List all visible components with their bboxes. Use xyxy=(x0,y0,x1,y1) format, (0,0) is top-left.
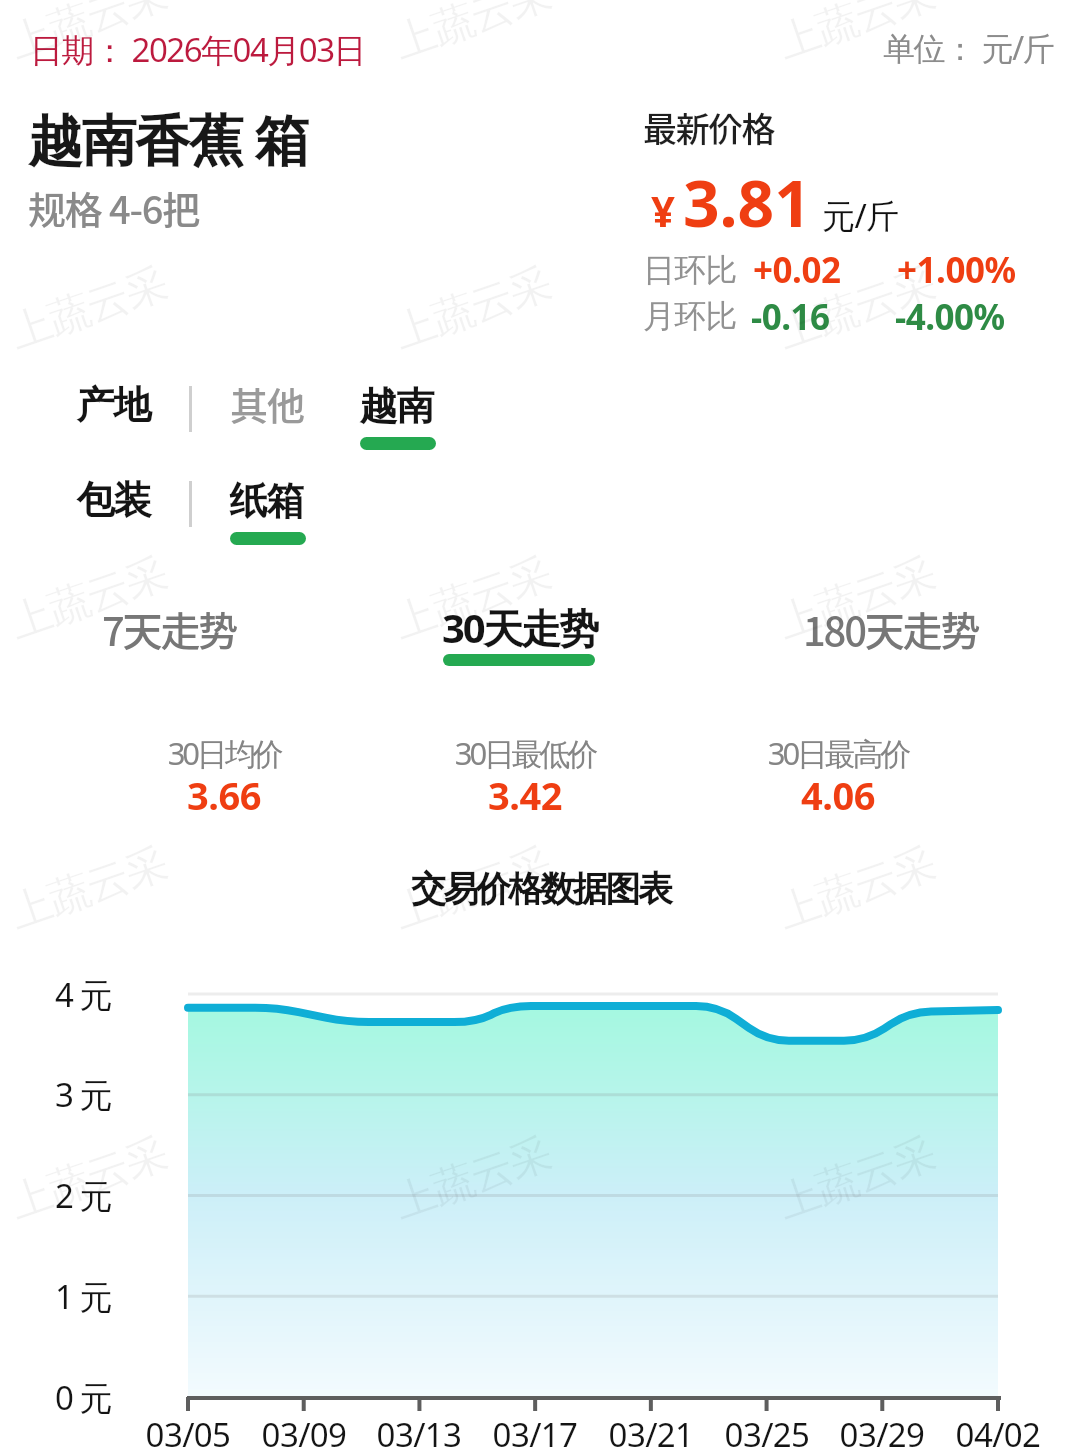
staticText: 03/09 xyxy=(234,1412,374,1455)
staticText: 03/17 xyxy=(465,1412,605,1455)
staticText: 上蔬云采 xyxy=(4,0,174,70)
staticText: 上蔬云采 xyxy=(4,1127,174,1230)
staticText: 0 元 xyxy=(55,1375,111,1420)
staticText: 2 元 xyxy=(55,1173,111,1218)
staticText: +0.02 xyxy=(753,246,841,294)
staticText: 上蔬云采 xyxy=(772,0,942,70)
staticText: 上蔬云采 xyxy=(772,1127,942,1230)
staticText: 04/02 xyxy=(928,1412,1068,1455)
staticText: 3.42 xyxy=(375,769,675,821)
staticText: 产地 xyxy=(77,381,151,429)
staticText: 纸箱 xyxy=(230,477,304,525)
button[interactable]: 30天走势 xyxy=(428,592,611,663)
staticText: 单位： 元/斤 xyxy=(883,26,1054,70)
staticText: 4.06 xyxy=(688,769,988,821)
staticText: 03/21 xyxy=(581,1412,721,1455)
button[interactable]: 纸箱 xyxy=(216,466,320,552)
staticText: -0.16 xyxy=(751,293,830,341)
staticText: 上蔬云采 xyxy=(388,0,558,70)
staticText: 03/29 xyxy=(812,1412,952,1455)
staticText: 30天走势 xyxy=(442,600,597,655)
staticText: 03/05 xyxy=(118,1412,258,1455)
staticText: 03/25 xyxy=(697,1412,837,1455)
staticText: 其他 xyxy=(230,376,305,428)
staticText: 上蔬云采 xyxy=(772,837,942,940)
staticText: -4.00% xyxy=(895,293,1005,341)
staticText: +1.00% xyxy=(897,246,1016,294)
staticText: 上蔬云采 xyxy=(388,837,558,940)
staticText: 月环比 xyxy=(643,296,737,336)
staticText: 上蔬云采 xyxy=(772,547,942,650)
button[interactable]: 180天走势 xyxy=(789,592,993,666)
staticText: 包装 xyxy=(77,476,151,524)
staticText: 30日均价 xyxy=(74,732,374,774)
staticText: 越南香蕉 箱 xyxy=(28,101,309,176)
staticText: 日期： 2026年04月03日 xyxy=(30,27,366,72)
staticText: 3.66 xyxy=(74,769,374,821)
staticText: 上蔬云采 xyxy=(4,257,174,360)
staticText: 30日最低价 xyxy=(375,732,675,774)
staticText: 交易价格数据图表 xyxy=(411,867,671,911)
staticText: 4 元 xyxy=(55,972,111,1017)
staticText: 上蔬云采 xyxy=(388,547,558,650)
staticText: 180天走势 xyxy=(803,600,979,658)
staticText: 元/斤 xyxy=(822,193,899,238)
button[interactable]: 越南 xyxy=(346,371,450,457)
staticText: 3.81 xyxy=(683,159,811,246)
staticText: 越南 xyxy=(360,382,434,430)
staticText: 上蔬云采 xyxy=(772,257,942,360)
staticText: 3 元 xyxy=(55,1072,111,1117)
staticText: 7天走势 xyxy=(102,600,236,658)
staticText: 日环比 xyxy=(643,250,737,290)
button[interactable]: 7天走势 xyxy=(88,592,250,666)
staticText: 上蔬云采 xyxy=(4,547,174,650)
staticText: 规格 4-6把 xyxy=(28,180,200,235)
staticText: 最新价格 xyxy=(643,103,775,152)
staticText: 03/13 xyxy=(349,1412,489,1455)
staticText: 1 元 xyxy=(55,1274,111,1319)
staticText: ¥ xyxy=(651,182,676,239)
button[interactable]: 其他 xyxy=(216,371,320,437)
staticText: 上蔬云采 xyxy=(4,837,174,940)
staticText: 上蔬云采 xyxy=(388,1127,558,1230)
staticText: 30日最高价 xyxy=(688,732,988,774)
staticText: 上蔬云采 xyxy=(388,257,558,360)
